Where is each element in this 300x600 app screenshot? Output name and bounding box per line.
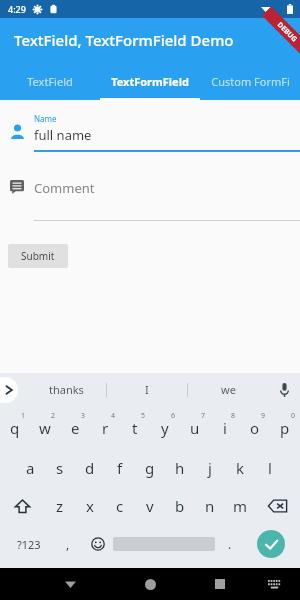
staticText: l: [268, 458, 272, 478]
button[interactable]: [113, 525, 215, 563]
button[interactable]: ,: [53, 525, 83, 563]
staticText: 2: [51, 411, 56, 421]
staticText: Submit: [21, 249, 55, 263]
button[interactable]: a: [15, 449, 45, 487]
button[interactable]: n: [195, 487, 225, 525]
button[interactable]: Hide keyboard: [56, 570, 84, 598]
staticText: thanks: [49, 382, 84, 397]
staticText: full name: [34, 126, 92, 144]
staticText: z: [56, 496, 64, 516]
button[interactable]: z: [45, 487, 75, 525]
button[interactable]: i: [210, 406, 240, 449]
staticText: 1: [21, 411, 26, 421]
staticText: u: [190, 418, 200, 438]
staticText: r: [102, 418, 109, 438]
button[interactable]: g: [135, 449, 165, 487]
button[interactable]: I: [107, 373, 187, 406]
button[interactable]: Recent apps: [206, 570, 234, 598]
button[interactable]: Home: [136, 570, 164, 598]
staticText: q: [10, 418, 20, 438]
staticText: .: [228, 536, 232, 552]
staticText: ,: [66, 536, 70, 552]
button[interactable]: Custom FormFi: [200, 62, 300, 100]
staticText: TextFormField: [111, 74, 189, 89]
button[interactable]: u: [180, 406, 210, 449]
staticText: w: [39, 418, 51, 438]
staticText: c: [116, 496, 124, 516]
button[interactable]: b: [165, 487, 195, 525]
staticText: 7: [201, 411, 206, 421]
staticText: TextField, TextFormField Demo: [14, 30, 234, 50]
button[interactable]: e: [60, 406, 90, 449]
button[interactable]: .: [215, 525, 245, 563]
staticText: 8: [231, 411, 236, 421]
staticText: TextField: [27, 74, 73, 89]
button[interactable]: Backspace: [255, 487, 300, 525]
staticText: t: [132, 418, 138, 438]
button[interactable]: Comment: [0, 174, 300, 226]
button[interactable]: c: [105, 487, 135, 525]
staticText: x: [86, 496, 94, 516]
staticText: y: [161, 418, 169, 438]
staticText: k: [236, 458, 245, 478]
staticText: s: [56, 458, 64, 478]
button[interactable]: TextField: [0, 62, 100, 100]
button[interactable]: Emoji: [83, 525, 113, 563]
button[interactable]: f: [105, 449, 135, 487]
staticText: 3: [81, 411, 86, 421]
staticText: Name: [34, 113, 57, 124]
staticText: Comment: [34, 179, 95, 197]
button[interactable]: Voice input: [268, 373, 300, 406]
staticText: we: [221, 382, 236, 397]
button[interactable]: v: [135, 487, 165, 525]
staticText: a: [26, 458, 35, 478]
button[interactable]: j: [195, 449, 225, 487]
button[interactable]: t: [120, 406, 150, 449]
staticText: p: [280, 418, 290, 438]
staticText: 5: [141, 411, 146, 421]
staticText: 9: [261, 411, 266, 421]
staticText: I: [145, 382, 149, 397]
staticText: b: [175, 496, 185, 516]
staticText: Custom FormFi: [211, 74, 290, 89]
staticText: h: [175, 458, 185, 478]
staticText: d: [85, 458, 95, 478]
staticText: f: [117, 458, 123, 478]
staticText: 4:29: [8, 3, 26, 15]
button[interactable]: x: [75, 487, 105, 525]
button[interactable]: w: [30, 406, 60, 449]
button[interactable]: we: [188, 373, 268, 406]
button[interactable]: p: [270, 406, 300, 449]
staticText: 4: [111, 411, 116, 421]
button[interactable]: Submit: [8, 244, 68, 268]
button[interactable]: d: [75, 449, 105, 487]
button[interactable]: Name: [0, 108, 300, 158]
button[interactable]: r: [90, 406, 120, 449]
button[interactable]: ?123: [4, 525, 53, 563]
staticText: v: [146, 496, 154, 516]
staticText: i: [223, 418, 227, 438]
button[interactable]: l: [255, 449, 285, 487]
button[interactable]: o: [240, 406, 270, 449]
staticText: m: [233, 496, 248, 516]
button[interactable]: h: [165, 449, 195, 487]
button[interactable]: k: [225, 449, 255, 487]
button[interactable]: Shift: [0, 487, 45, 525]
staticText: DEBUG: [275, 20, 299, 44]
button[interactable]: q: [0, 406, 30, 449]
button[interactable]: thanks: [26, 373, 106, 406]
staticText: 0: [291, 411, 296, 421]
button[interactable]: Enter: [245, 525, 296, 563]
button[interactable]: TextFormField: [100, 62, 200, 100]
staticText: g: [145, 458, 155, 478]
button[interactable]: Expand suggestions: [0, 377, 18, 403]
staticText: j: [208, 458, 212, 478]
staticText: 6: [171, 411, 176, 421]
button[interactable]: Switch keyboard: [262, 572, 286, 596]
button[interactable]: s: [45, 449, 75, 487]
button[interactable]: m: [225, 487, 255, 525]
staticText: ?123: [17, 537, 41, 552]
staticText: o: [250, 418, 260, 438]
staticText: e: [71, 418, 80, 438]
button[interactable]: y: [150, 406, 180, 449]
